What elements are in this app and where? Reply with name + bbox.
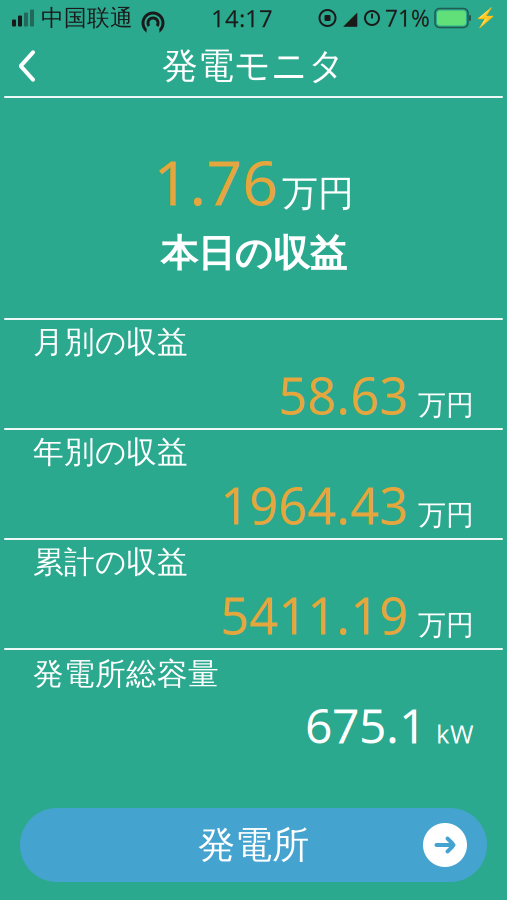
staticText: 58.63 [278, 361, 408, 428]
staticText: 万円 [282, 171, 354, 215]
staticText: kW [436, 717, 474, 750]
staticText: 累計の収益 [33, 543, 188, 581]
staticText: 万円 [418, 608, 474, 642]
staticText: 年別の収益 [33, 433, 188, 471]
staticText: 万円 [418, 388, 474, 422]
staticText: 675.1 [305, 693, 426, 757]
staticText: ⚡ [474, 7, 497, 29]
staticText: 71% [385, 3, 430, 33]
staticText: 1964.43 [220, 471, 408, 538]
staticText: 本日の収益 [160, 231, 346, 277]
staticText: 発電所総容量 [33, 655, 219, 693]
staticText: 14:17 [211, 2, 273, 34]
staticText: 万円 [418, 498, 474, 532]
staticText: 1.76 [153, 139, 278, 223]
staticText: 中国联通 [41, 4, 133, 32]
button[interactable]: Back [0, 37, 56, 95]
staticText: 月別の収益 [33, 323, 188, 361]
staticText: 発電所 [198, 822, 309, 868]
staticText: ◢ [343, 7, 357, 29]
staticText: 発電モニタ [162, 44, 345, 88]
button[interactable]: 発電所 [20, 808, 487, 882]
staticText: 5411.19 [220, 581, 408, 648]
